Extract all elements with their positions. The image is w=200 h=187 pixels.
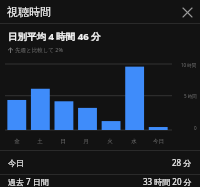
staticText: 金 [14, 138, 20, 145]
staticText: 10 時間 [181, 62, 197, 68]
staticText: 土 [37, 138, 43, 145]
staticText: 月 [83, 138, 89, 145]
staticText: 日別平均 4 時間 46 分 [8, 30, 101, 43]
button[interactable]: 過去 7 日間 [0, 175, 200, 187]
staticText: 28 分 [172, 157, 192, 168]
button[interactable]: 今日 [0, 151, 200, 174]
staticText: 火 [107, 138, 113, 145]
staticText: 水 [131, 138, 137, 145]
staticText: 33 時間 20 分 [143, 176, 192, 187]
staticText: 日 [60, 138, 66, 145]
button[interactable]: 閉じる [178, 3, 196, 21]
staticText: 0 [194, 125, 197, 131]
staticText: 過去 7 日間 [8, 176, 49, 187]
staticText: 5 時間 [184, 93, 197, 99]
staticText: 先週と比較して 2% [15, 46, 64, 54]
staticText: 今日 [8, 158, 24, 168]
staticText: 今日 [153, 138, 164, 145]
staticText: 視聴時間 [7, 5, 51, 19]
